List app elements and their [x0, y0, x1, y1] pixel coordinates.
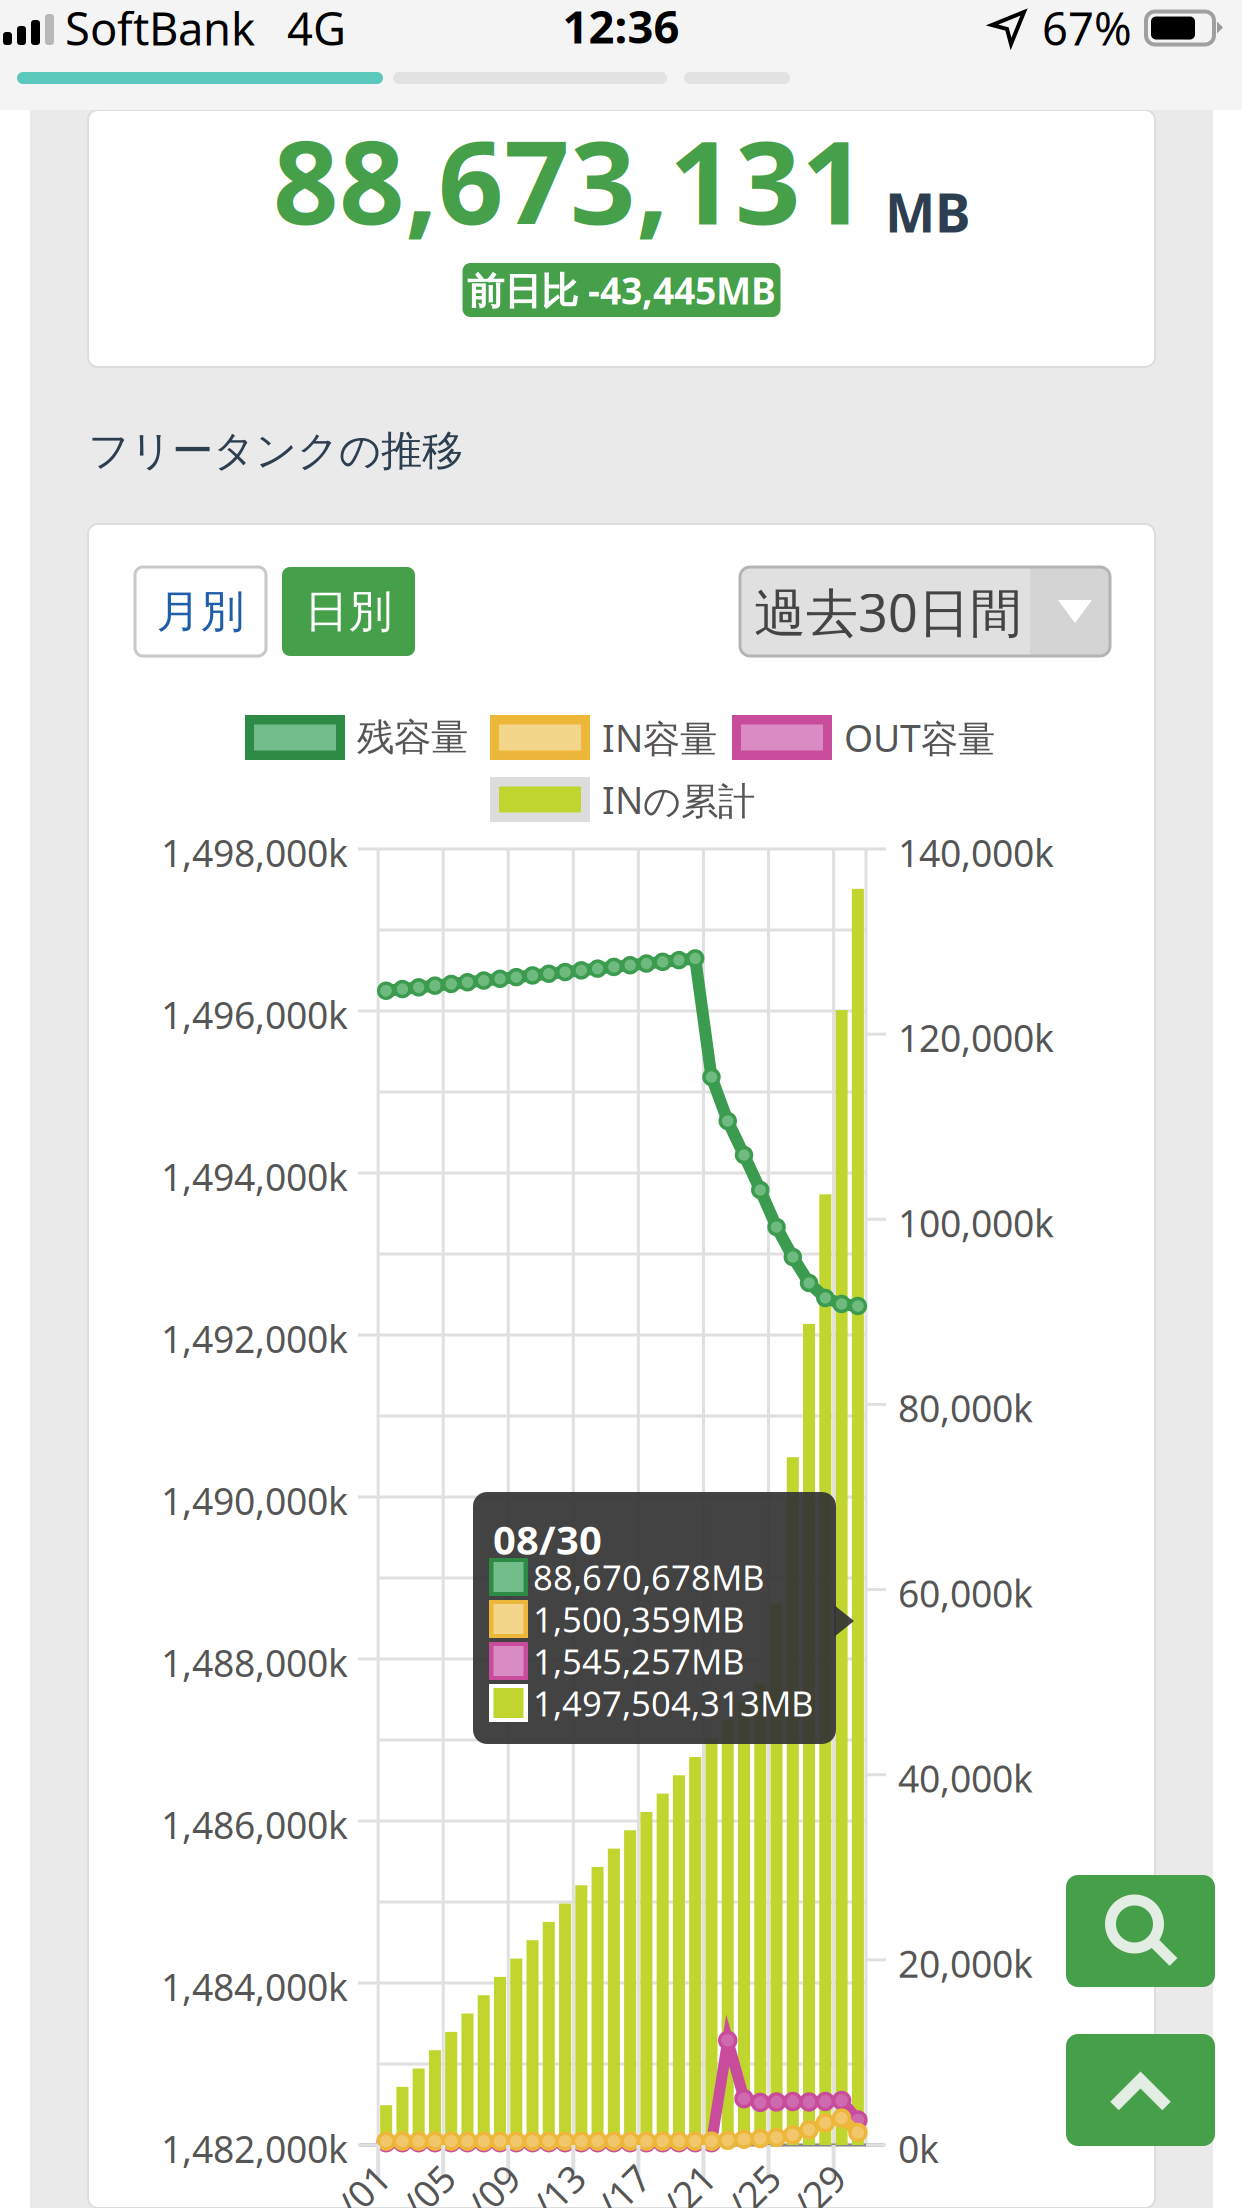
staticText: 前日比 -43,445MB — [467, 265, 776, 315]
staticText: 1,490,000k — [161, 1475, 348, 1526]
staticText: 120,000k — [898, 1012, 1054, 1063]
staticText: 60,000k — [898, 1568, 1033, 1618]
staticText: 1,486,000k — [161, 1799, 348, 1850]
staticText: 40,000k — [898, 1753, 1033, 1803]
staticText: 1,500,359MB — [533, 1595, 745, 1643]
button[interactable]: 過去30日間 — [740, 567, 1110, 656]
staticText: 140,000k — [898, 827, 1054, 878]
button[interactable]: 月別 — [135, 567, 266, 656]
staticText: /13 — [536, 2180, 592, 2208]
staticText: 88,670,678MB — [533, 1553, 765, 1601]
staticText: /01 — [341, 2180, 397, 2208]
staticText: /05 — [406, 2180, 462, 2208]
staticText: OUT容量 — [844, 712, 995, 763]
staticText: /17 — [601, 2180, 657, 2208]
staticText: フリータンクの推移 — [88, 425, 463, 477]
staticText: 1,494,000k — [161, 1151, 348, 1202]
staticText: 1,488,000k — [161, 1637, 348, 1688]
staticText: 月別 — [156, 584, 244, 639]
staticText: 1,484,000k — [161, 1961, 348, 2012]
staticText: 過去30日間 — [754, 576, 1022, 647]
staticText: 0k — [898, 2123, 939, 2174]
staticText: 1,545,257MB — [533, 1637, 745, 1685]
staticText: MB — [885, 175, 970, 248]
staticText: IN容量 — [602, 712, 717, 763]
staticText: /09 — [471, 2180, 527, 2208]
staticText: 4G — [287, 0, 346, 59]
staticText: /25 — [731, 2180, 787, 2208]
staticText: 88,673,131 — [273, 102, 867, 258]
staticText: /21 — [666, 2180, 722, 2208]
staticText: 20,000k — [898, 1938, 1033, 1989]
button[interactable]: Search — [1066, 1875, 1215, 1987]
staticText: 1,497,504,313MB — [533, 1679, 814, 1727]
button[interactable]: 日別 — [282, 567, 415, 656]
staticText: 日別 — [304, 584, 392, 639]
staticText: 08/30 — [493, 1512, 602, 1566]
staticText: 80,000k — [898, 1382, 1033, 1433]
staticText: 1,492,000k — [161, 1313, 348, 1364]
staticText: 1,482,000k — [161, 2123, 348, 2174]
button[interactable]: Scroll to top — [1066, 2034, 1215, 2146]
staticText: 1,496,000k — [161, 989, 348, 1040]
staticText: 12:36 — [562, 0, 679, 57]
staticText: 100,000k — [898, 1197, 1054, 1248]
staticText: 1,498,000k — [161, 827, 348, 878]
staticText: /29 — [797, 2180, 853, 2208]
staticText: 67% — [1042, 0, 1132, 59]
staticText: 残容量 — [357, 714, 468, 761]
staticText: SoftBank — [65, 0, 255, 59]
staticText: INの累計 — [602, 774, 755, 825]
